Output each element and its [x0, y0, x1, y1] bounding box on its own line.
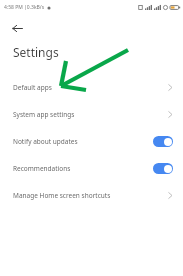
button[interactable]: Notify about updates [0, 128, 183, 155]
button[interactable]: Notify about updates [153, 136, 173, 147]
button[interactable]: System app settings [0, 101, 183, 128]
button[interactable]: Default apps [0, 74, 183, 101]
button[interactable]: Recommendations [0, 155, 183, 182]
staticText: Manage Home screen shortcuts [13, 191, 168, 200]
staticText: Recommendations [13, 164, 153, 173]
staticText: Settings [13, 44, 59, 60]
staticText: System app settings [13, 110, 168, 119]
staticText: Notify about updates [13, 137, 153, 146]
button[interactable]: Back [9, 20, 25, 36]
staticText: 4:58 PM |0.3kB/s [4, 4, 45, 11]
staticText: Default apps [13, 83, 168, 92]
button[interactable]: Recommendations [153, 163, 173, 174]
button[interactable]: Manage Home screen shortcuts [0, 182, 183, 209]
